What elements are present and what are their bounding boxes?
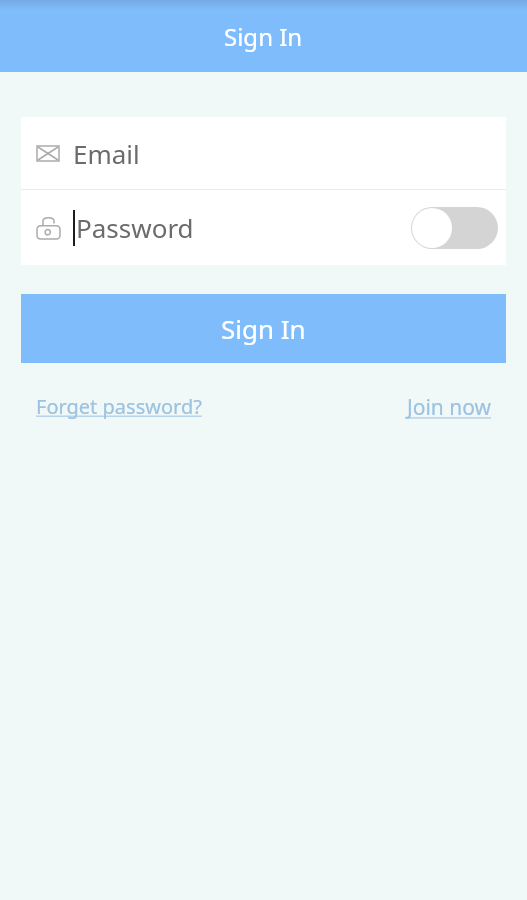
button[interactable]: Sign In (21, 294, 506, 363)
staticText: Forget password? (36, 393, 202, 420)
button[interactable]: Forget password? (36, 393, 202, 420)
button[interactable]: Sign In (0, 0, 527, 72)
button[interactable]: Join now (407, 393, 492, 422)
staticText: Email (73, 136, 140, 171)
button[interactable]: Email (21, 117, 506, 189)
staticText: Join now (407, 393, 492, 422)
button[interactable]: Show password (411, 207, 498, 249)
staticText: Password (76, 210, 194, 245)
button[interactable]: Password (21, 190, 506, 265)
staticText: Sign In (224, 20, 303, 53)
staticText: Sign In (221, 311, 306, 346)
